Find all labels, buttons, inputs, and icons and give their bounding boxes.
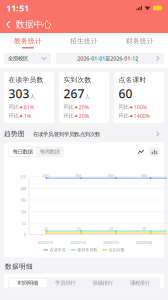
staticText: 1400%	[134, 112, 150, 119]
staticText: 时间明细	[18, 280, 38, 286]
staticText: 课程排行	[130, 280, 150, 286]
staticText: 2026-01-01至2026-01-12	[77, 55, 138, 62]
staticText: 在读学员	[50, 247, 66, 252]
staticText: 0	[24, 232, 26, 237]
staticText: 环比	[118, 113, 128, 119]
staticText: 62	[22, 220, 26, 226]
staticText: 20260102	[70, 240, 86, 245]
staticText: 20	[43, 226, 47, 231]
staticText: 20260101	[37, 240, 53, 245]
staticText: 20	[142, 226, 146, 231]
staticText: 全部校区	[8, 55, 28, 62]
staticText: 同比	[63, 104, 73, 110]
staticText: 环比	[8, 113, 18, 119]
button[interactable]: 教务统计	[0, 33, 56, 51]
button[interactable]: 班级排行	[84, 279, 121, 287]
staticText: 在读学员数	[8, 76, 43, 84]
staticText: 签到学员数	[77, 247, 97, 252]
staticText: 数据明细	[5, 262, 33, 271]
staticText: 点到次数	[109, 247, 125, 252]
staticText: 每日数据	[13, 148, 33, 155]
staticText: 267	[63, 86, 84, 101]
staticText: 186	[20, 197, 26, 203]
staticText: 303	[108, 173, 114, 178]
button[interactable]: 在读学员,签到学员数,点到次数	[29, 128, 164, 139]
staticText: 124	[20, 209, 26, 214]
button[interactable]: Bar chart	[149, 147, 160, 156]
button[interactable]: 招生统计	[56, 33, 112, 51]
staticText: 303	[141, 173, 147, 178]
staticText: 20	[76, 226, 80, 231]
staticText: 20260104	[136, 240, 152, 245]
button[interactable]: 时间明细	[9, 279, 47, 287]
button[interactable]: Line chart	[135, 147, 146, 156]
staticText: 20%	[79, 103, 89, 111]
staticText: 60	[118, 86, 132, 101]
staticText: 310	[20, 174, 26, 179]
staticText: 同比	[8, 104, 18, 110]
staticText: 每周数据	[40, 148, 60, 155]
staticText: 20%	[79, 112, 89, 119]
staticText: 人	[85, 93, 90, 100]
staticText: 1%	[24, 112, 31, 119]
staticText: 环比	[63, 113, 73, 119]
staticText: 班级排行	[93, 280, 113, 286]
staticText: 同比	[118, 104, 128, 110]
button[interactable]: 每日数据	[9, 148, 36, 156]
staticText: 61%	[24, 103, 34, 111]
staticText: 20	[109, 226, 113, 231]
button[interactable]: 学员排行	[47, 279, 84, 287]
staticText: 实到次数	[63, 76, 91, 84]
staticText: 303	[75, 173, 81, 178]
staticText: 财务统计	[126, 37, 154, 45]
staticText: 数据中心	[15, 19, 51, 30]
staticText: 100%	[134, 103, 147, 111]
button[interactable]: 每周数据	[36, 148, 63, 156]
button[interactable]: 全部校区	[4, 53, 51, 64]
staticText: 11:51	[6, 2, 29, 14]
button[interactable]: 财务统计	[112, 33, 168, 51]
staticText: 303	[8, 86, 29, 101]
button[interactable]: 课程排行	[121, 279, 159, 287]
button[interactable]: 2026-01-01至2026-01-12	[56, 53, 164, 64]
staticText: 在读学员,签到学员数,点到次数	[33, 130, 100, 137]
staticText: 人	[30, 93, 35, 100]
staticText: 招生统计	[70, 37, 98, 45]
staticText: 点名课时	[118, 76, 146, 84]
button[interactable]: Back	[4, 17, 12, 32]
staticText: 248	[20, 186, 26, 191]
staticText: 303	[42, 173, 48, 178]
staticText: 20260103	[103, 240, 119, 245]
staticText: 教务统计	[14, 37, 42, 45]
staticText: 学员排行	[55, 280, 75, 286]
staticText: 趋势图	[4, 130, 25, 138]
